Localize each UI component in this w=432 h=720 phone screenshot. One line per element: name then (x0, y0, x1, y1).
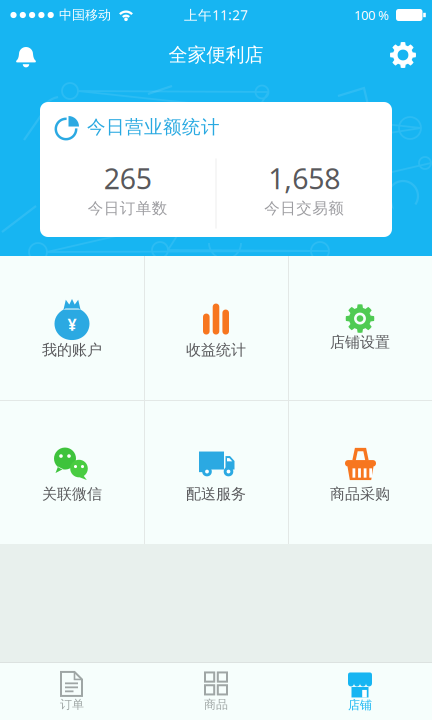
staticText: ¥ (67, 314, 76, 335)
button[interactable]: ¥ (0, 256, 144, 400)
staticText: 今日营业额统计 (87, 115, 220, 139)
button[interactable]: 店铺设置 (288, 256, 432, 400)
staticText: 店铺设置 (330, 333, 390, 352)
staticText: 今日订单数 (88, 199, 168, 218)
staticText: 今日交易额 (264, 199, 344, 218)
staticText: 中国移动 (59, 7, 111, 23)
button[interactable]: 商品 (144, 663, 288, 720)
button[interactable]: 关联微信 (0, 400, 144, 544)
button[interactable]: 订单 (0, 663, 144, 720)
button[interactable]: 商品采购 (288, 400, 432, 544)
staticText: 商品采购 (330, 485, 390, 503)
button[interactable]: 收益统计 (144, 256, 288, 400)
staticText: 上午11:27 (184, 6, 248, 24)
staticText: 配送服务 (186, 485, 246, 503)
staticText: 订单 (60, 697, 84, 712)
staticText: 店铺 (348, 697, 372, 712)
staticText: 商品 (204, 697, 228, 712)
staticText: 收益统计 (186, 341, 246, 359)
button[interactable] (390, 42, 416, 68)
staticText: 全家便利店 (168, 43, 263, 67)
staticText: 1,658 (268, 159, 340, 198)
staticText: 我的账户 (42, 341, 102, 359)
staticText: 100 % (354, 6, 389, 24)
staticText: 关联微信 (42, 485, 102, 503)
staticText: 265 (104, 159, 152, 198)
button[interactable] (13, 42, 39, 68)
button[interactable]: 店铺 (288, 663, 432, 720)
button[interactable]: 配送服务 (144, 400, 288, 544)
